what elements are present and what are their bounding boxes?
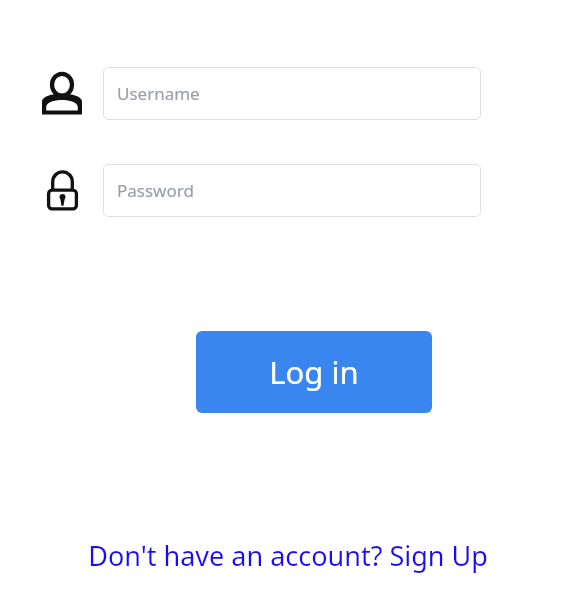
staticText: Log in bbox=[269, 351, 359, 393]
button[interactable]: Log in bbox=[196, 331, 432, 413]
staticText: Don't have an account? Sign Up bbox=[88, 537, 488, 574]
button[interactable]: Username bbox=[103, 67, 481, 120]
staticText: Username bbox=[117, 82, 200, 105]
other: Username bbox=[42, 73, 82, 115]
staticText: Password bbox=[117, 179, 194, 202]
other: Password bbox=[45, 170, 80, 212]
button[interactable]: Don't have an account? Sign Up bbox=[0, 534, 575, 576]
button[interactable]: Password bbox=[103, 164, 481, 217]
